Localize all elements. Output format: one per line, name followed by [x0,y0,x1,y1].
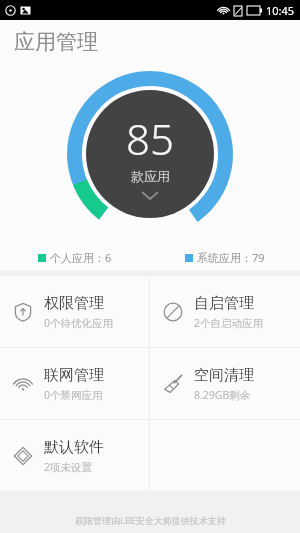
staticText: 自启管理 [194,294,254,313]
staticText: 应用管理 [14,29,98,55]
staticText: 0个待优化应用 [44,316,114,330]
staticText: 默认软件 [44,438,104,457]
staticText: 8.29GB剩余 [194,388,251,402]
staticText: 款应用 [131,168,170,184]
button[interactable]: 默认软件 [0,420,149,491]
staticText: 权限管理 [44,294,104,313]
staticText: 10:45 [266,3,295,18]
button[interactable]: 联网管理 [0,348,149,419]
staticText: 0个禁网应用 [44,388,103,402]
staticText: 个人应用：6 [50,250,112,265]
staticText: 联网管理 [44,366,104,385]
staticText: 2项未设置 [44,460,93,474]
button[interactable]: 空间清理 [150,348,300,419]
staticText: 系统应用：79 [197,250,265,265]
staticText: 85 [126,110,174,167]
button[interactable]: 85 apps [67,71,233,237]
button[interactable]: 自启管理 [150,276,300,347]
staticText: 权限管理由LBE安全大师提供技术支持 [75,514,226,526]
staticText: 空间清理 [194,366,254,385]
button[interactable]: 权限管理 [0,276,149,347]
staticText: 2个自启动应用 [194,316,264,330]
